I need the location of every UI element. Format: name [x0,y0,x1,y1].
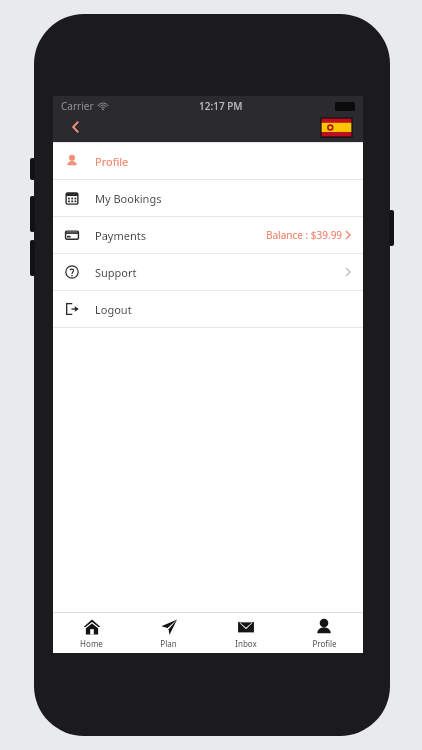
button[interactable]: My Bookings [53,180,363,216]
button[interactable]: Payments [53,217,363,253]
staticText: Plan [160,638,177,649]
staticText: 12:17 PM [199,99,243,113]
staticText: Carrier [61,99,94,113]
button[interactable]: Logout [53,291,363,327]
button[interactable]: Inbox [207,613,285,653]
staticText: Payments [95,228,146,243]
button[interactable]: Plan [130,613,207,653]
staticText: Profile [95,154,129,169]
button[interactable]: Profile [53,143,363,179]
staticText: Inbox [235,638,257,649]
staticText: Profile [312,638,337,649]
button[interactable]: Profile [285,613,363,653]
staticText: Logout [95,302,132,317]
button[interactable]: Back [63,116,89,138]
button[interactable]: Support [53,254,363,290]
staticText: Home [80,638,103,649]
button[interactable]: Language Spain [319,117,353,138]
staticText: Support [95,265,137,280]
staticText: My Bookings [95,191,162,206]
staticText: Balance : $39.99 [266,228,343,242]
button[interactable]: Home [53,613,130,653]
